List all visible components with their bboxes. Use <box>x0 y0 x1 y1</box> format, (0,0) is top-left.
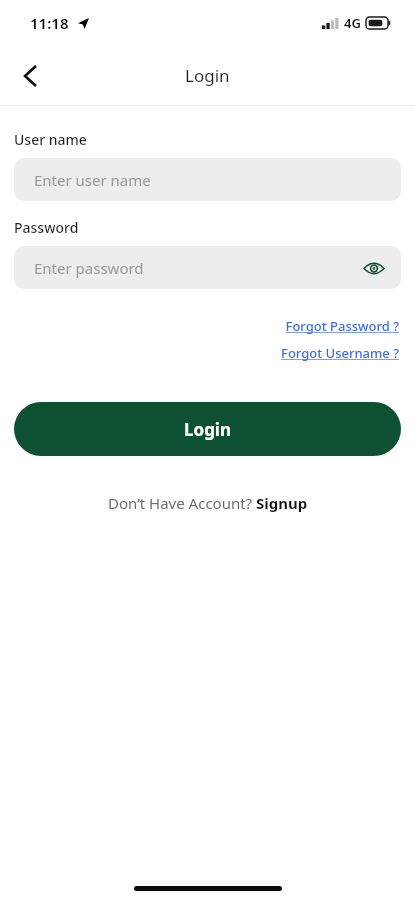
staticText: Forgot Username ? <box>281 344 399 362</box>
button[interactable]: Don’t Have Account? Signup <box>102 489 314 517</box>
staticText: 4G <box>344 14 361 32</box>
button[interactable]: Show password <box>357 251 391 285</box>
staticText: Enter password <box>34 258 144 278</box>
button[interactable]: Forgot Username ? <box>279 342 401 364</box>
staticText: 11:18 <box>30 13 69 33</box>
button[interactable]: Enter password <box>14 246 401 289</box>
button[interactable]: Enter user name <box>14 158 401 201</box>
staticText: Login <box>185 64 230 87</box>
button[interactable]: Forgot Password ? <box>283 315 401 337</box>
button[interactable]: Back <box>8 54 52 98</box>
button[interactable]: Login <box>14 402 401 456</box>
staticText: Enter user name <box>34 170 151 190</box>
staticText: User name <box>14 130 87 149</box>
staticText: Login <box>184 418 232 441</box>
staticText: Forgot Password ? <box>285 317 399 335</box>
staticText: Don’t Have Account? Signup <box>108 493 308 513</box>
staticText: Password <box>14 218 79 237</box>
